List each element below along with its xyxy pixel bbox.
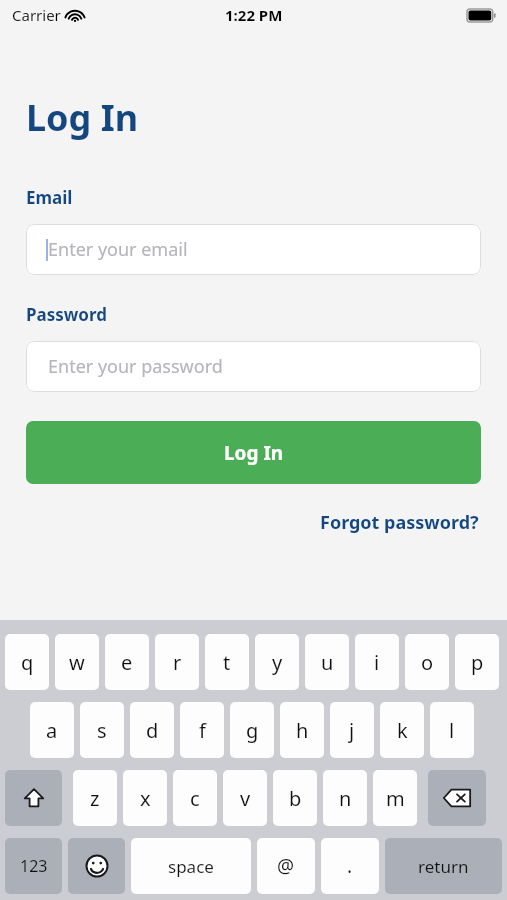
staticText: Carrier <box>12 5 61 25</box>
staticText: space <box>168 855 214 878</box>
button[interactable]: q <box>5 634 49 690</box>
staticText: p <box>471 649 484 676</box>
staticText: k <box>397 717 408 744</box>
staticText: b <box>289 785 302 812</box>
staticText: c <box>190 785 200 812</box>
button[interactable]: f <box>180 702 224 758</box>
button[interactable]: i <box>355 634 399 690</box>
button[interactable]: Shift <box>5 770 62 826</box>
staticText: 1:22 PM <box>225 5 283 25</box>
button[interactable]: x <box>123 770 167 826</box>
button[interactable]: t <box>205 634 249 690</box>
button[interactable]: l <box>430 702 474 758</box>
button[interactable]: @ <box>257 838 315 894</box>
staticText: return <box>418 855 469 878</box>
button[interactable]: e <box>105 634 149 690</box>
staticText: Enter your password <box>48 354 223 379</box>
button[interactable]: w <box>55 634 99 690</box>
button[interactable]: r <box>155 634 199 690</box>
button[interactable]: 123 <box>5 838 62 894</box>
staticText: q <box>21 649 34 676</box>
button[interactable]: y <box>255 634 299 690</box>
staticText: o <box>421 649 434 676</box>
button[interactable]: k <box>380 702 424 758</box>
staticText: l <box>449 717 455 744</box>
button[interactable]: g <box>230 702 274 758</box>
staticText: m <box>386 785 405 812</box>
button[interactable]: h <box>280 702 324 758</box>
button[interactable]: m <box>373 770 417 826</box>
staticText: z <box>90 785 100 812</box>
button[interactable]: . <box>321 838 379 894</box>
staticText: r <box>173 649 182 676</box>
staticText: y <box>272 649 283 676</box>
staticText: x <box>140 785 151 812</box>
staticText: s <box>97 717 107 744</box>
staticText: w <box>69 649 85 676</box>
staticText: f <box>199 717 206 744</box>
button[interactable]: j <box>330 702 374 758</box>
staticText: Enter your email <box>48 237 188 262</box>
button[interactable]: Backspace <box>428 770 486 826</box>
button[interactable]: c <box>173 770 217 826</box>
staticText: n <box>339 785 352 812</box>
button[interactable]: Enter your password <box>26 341 481 392</box>
button[interactable]: s <box>80 702 124 758</box>
button[interactable]: o <box>405 634 449 690</box>
staticText: Password <box>26 303 107 326</box>
staticText: 123 <box>20 855 48 877</box>
staticText: . <box>347 853 353 879</box>
button[interactable]: space <box>131 838 251 894</box>
staticText: Forgot password? <box>320 510 479 535</box>
button[interactable]: return <box>385 838 502 894</box>
staticText: Log In <box>26 93 139 142</box>
button[interactable]: Emoji <box>68 838 125 894</box>
button[interactable]: v <box>223 770 267 826</box>
staticText: v <box>240 785 251 812</box>
button[interactable]: Enter your email <box>26 224 481 275</box>
button[interactable]: p <box>455 634 499 690</box>
staticText: e <box>121 649 133 676</box>
staticText: h <box>296 717 309 744</box>
staticText: t <box>223 649 231 676</box>
button[interactable]: Forgot password? <box>318 508 481 537</box>
button[interactable]: d <box>130 702 174 758</box>
button[interactable]: u <box>305 634 349 690</box>
button[interactable]: a <box>30 702 74 758</box>
staticText: g <box>246 717 259 744</box>
button[interactable]: Log In <box>26 421 481 484</box>
button[interactable]: n <box>323 770 367 826</box>
staticText: j <box>349 717 355 744</box>
staticText: a <box>46 717 58 744</box>
staticText: @ <box>277 853 295 879</box>
staticText: i <box>374 649 380 676</box>
staticText: Email <box>26 186 73 209</box>
staticText: d <box>146 717 159 744</box>
staticText: u <box>321 649 334 676</box>
button[interactable]: b <box>273 770 317 826</box>
button[interactable]: z <box>73 770 117 826</box>
staticText: Log In <box>224 440 284 466</box>
